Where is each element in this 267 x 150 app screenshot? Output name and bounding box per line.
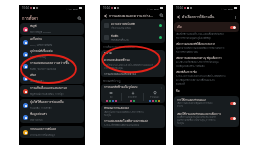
staticText: เลือกรูปแบบการแสดงผลที่เหมาะกับการใช้งาน xyxy=(104,111,144,114)
staticText: ปรับตามแสงแวดล้อม xyxy=(111,26,132,29)
staticText: กำหนดเอง xyxy=(150,96,160,99)
staticText: การใช้งานแบบกำหนดเอง xyxy=(177,98,206,102)
staticText: 10:04 xyxy=(176,6,183,10)
staticText: คุณสามารถเลือกการแสดงผลที่ต้องการได้ตามต… xyxy=(176,47,225,50)
staticText: ธีมมืด xyxy=(111,34,119,38)
button[interactable]: Search xyxy=(77,16,82,21)
staticText: โดยที่คุณไม่ต้องทำอะไรเพิ่มเติม xyxy=(176,65,205,68)
staticText: ◦◦ ılı xyxy=(221,7,227,10)
staticText: ใช้สีเข้มกับทั้งระบบ xyxy=(111,38,129,41)
staticText: สัญลักษณ์การแจ้งเตือน, การปลุก xyxy=(30,92,64,96)
staticText: การแสดงผลและความสว่าง... xyxy=(109,13,159,19)
button[interactable]: ธรรมชาติ xyxy=(122,91,143,102)
button[interactable]: เลือกใช้งานแบบกำหนดเองตามต้องการ xyxy=(174,110,239,127)
button[interactable]: กำหนดเอง xyxy=(144,91,165,102)
staticText: ปุ่มวิธีใช้และการช่วยเหลือ xyxy=(30,100,64,105)
staticText: ลักษณะที่ปรากฏ xyxy=(103,79,121,83)
staticText: เครือข่าย xyxy=(30,37,42,42)
button[interactable]: เครือข่าย xyxy=(20,36,84,48)
staticText: อุปกรณ์ที่เชื่อมต่อ xyxy=(30,49,53,54)
staticText: ภายในเครื่องของคุณ xyxy=(104,67,123,70)
staticText: เปิด xyxy=(177,25,182,30)
button[interactable]: การแสดงผลแอปเต็มหน้าจอ xyxy=(101,71,165,77)
button[interactable]: เปิด xyxy=(174,22,239,32)
staticText: กับการใช้งานของคุณในรูปแบบที่ดีที่สุด xyxy=(176,37,211,40)
staticText: ปิด xyxy=(176,89,180,94)
staticText: 85% xyxy=(73,7,78,10)
button[interactable]: อุปกรณ์ที่เชื่อมต่อ xyxy=(20,48,84,60)
staticText: 85% xyxy=(228,7,233,10)
staticText: ภาษาและการป้อนข้อมูล xyxy=(30,133,55,137)
staticText: ตัวเลือกนี้ xyxy=(176,83,185,86)
staticText: ระบบจะปรับให้อัตโนมัติตามแสงแวดล้อม xyxy=(104,124,140,127)
staticText: การปรับความละเอียดจะช่วยประหยัดพลังงานแบ… xyxy=(104,64,153,67)
button[interactable]: Search xyxy=(159,13,164,18)
staticText: บัญชี xyxy=(30,24,37,29)
staticText: เลือกการแสดงผลตามที่คุณต้องการได้เลย xyxy=(177,102,213,105)
button[interactable]: การแสดงผลอัตโนมัติตามสภาพแสง xyxy=(101,118,165,128)
staticText: ตัวเลือกการใช้งานอื่น xyxy=(182,14,233,20)
staticText: เมื่อเปิดใช้งานโหมดนี้ ระบบจะแสดงเนื้อหา… xyxy=(176,33,224,36)
staticText: การแสดงผลอัตโนมัติตามสภาพแสง xyxy=(104,119,148,124)
staticText: และให้ระบบปรับให้เหมาะกับการใช้งานของคุณ xyxy=(176,61,219,64)
staticText: การแจ้งเตือนและแถบสถานะ xyxy=(30,86,68,91)
staticText: ตามใจ xyxy=(177,105,183,108)
staticText: ขนาด xyxy=(104,51,112,56)
staticText: 10:04 xyxy=(103,6,110,10)
staticText: ข้อมูลส่วนตัว xyxy=(30,112,47,117)
staticText: ในการใช้งานที่ดีกว่าเดิม xyxy=(176,51,198,54)
staticText: ลักษณะการแสดงผล xyxy=(104,106,129,111)
button[interactable]: Back xyxy=(175,14,181,20)
button[interactable] xyxy=(230,26,236,29)
button[interactable]: ลักษณะการแสดงผล xyxy=(101,105,165,118)
staticText: ◦◦ ılı xyxy=(66,7,72,10)
staticText: รวมทั้งการแสดงผลในรูปแบบใหม่ ที่จะช่วยให… xyxy=(177,116,216,119)
staticText: ช่วยเหลือ, การเข้าถึง xyxy=(30,106,52,110)
button[interactable] xyxy=(230,102,236,105)
button[interactable]: การแสดงผลและความสว่างขึ้น xyxy=(20,60,84,72)
staticText: สด xyxy=(110,96,113,99)
staticText: ◦◦ ılı xyxy=(147,7,153,10)
staticText: เลือกการแสดงผลแบบต่างๆ ที่คุณต้องการ xyxy=(176,56,222,60)
staticText: บลูทูธ, การจับคู่ xyxy=(30,55,46,59)
staticText: 85% xyxy=(154,7,159,10)
staticText: และให้คุณใช้งานได้ยาวนานขึ้นในแต่ละวัน xyxy=(176,79,215,82)
staticText: ระบบและการอัปเดต xyxy=(30,127,57,132)
staticText: 10:04 xyxy=(22,6,29,10)
button[interactable]: การใช้งานแบบกำหนดเอง xyxy=(174,96,239,110)
button[interactable]: เสียง xyxy=(20,72,84,84)
button[interactable]: More options xyxy=(233,15,238,20)
button[interactable]: ความสว่างอัตโนมัติ xyxy=(101,19,165,31)
button[interactable]: การแจ้งเตือนและแถบสถานะ xyxy=(20,85,84,97)
button[interactable]: การบอกสีหน้าจอในรูปแบบ xyxy=(101,84,165,91)
staticText: ของคุณ xyxy=(177,122,184,125)
button[interactable]: ข้อมูลส่วนตัว xyxy=(20,111,84,123)
button[interactable] xyxy=(230,117,236,120)
staticText: ความละเอียดหน้าจอ xyxy=(104,58,130,63)
button[interactable]: Back xyxy=(102,13,108,19)
button[interactable]: สด xyxy=(101,91,121,102)
button[interactable]: ความละเอียดหน้าจอ xyxy=(101,57,165,71)
staticText: ธีมมืด, ขนาดการแสดงผล xyxy=(30,67,57,71)
staticText: ของคุณ xyxy=(104,114,111,117)
staticText: เสียง xyxy=(30,73,37,78)
staticText: ความสว่างอัตโนมัติ xyxy=(111,22,135,26)
button[interactable]: ระบบและการอัปเดต xyxy=(20,126,84,138)
staticText: Wi-Fi, เครือข่ายมือถือ xyxy=(30,43,53,47)
staticText: การแสดงผลแอปเต็มหน้าจอ xyxy=(104,72,137,76)
staticText: การแสดงผลและความสว่างขึ้น xyxy=(30,61,70,66)
button[interactable]: ธีมมืด xyxy=(101,31,165,43)
button[interactable]: บัญชี xyxy=(20,23,84,35)
staticText: การตั้งค่า xyxy=(22,15,39,21)
button[interactable]: ขนาด xyxy=(101,50,165,57)
staticText: ระบบจะลดการแสดงผลบางส่วนลง เพื่อประหยัดพ… xyxy=(176,75,226,78)
staticText: เลือกที่ต้องการ: ปิด xyxy=(176,70,197,74)
staticText: คุณใช้งานได้ดีขึ้นกว่าเดิม ในทุกๆ การใช้… xyxy=(177,119,216,122)
staticText: เลือกใช้งานแบบกำหนดเองตามต้องการ xyxy=(177,112,221,116)
staticText: เสียงเรียกเข้า xyxy=(30,79,44,83)
staticText: การตั้งค่าการแสดงผลเพิ่มเติม xyxy=(103,45,135,49)
button[interactable]: ปุ่มวิธีใช้และการช่วยเหลือ xyxy=(20,99,84,111)
staticText: › xyxy=(161,86,162,90)
staticText: การบอกสีหน้าจอในรูปแบบ xyxy=(104,85,161,90)
staticText: จัดการบัญชี Google xyxy=(30,30,51,34)
